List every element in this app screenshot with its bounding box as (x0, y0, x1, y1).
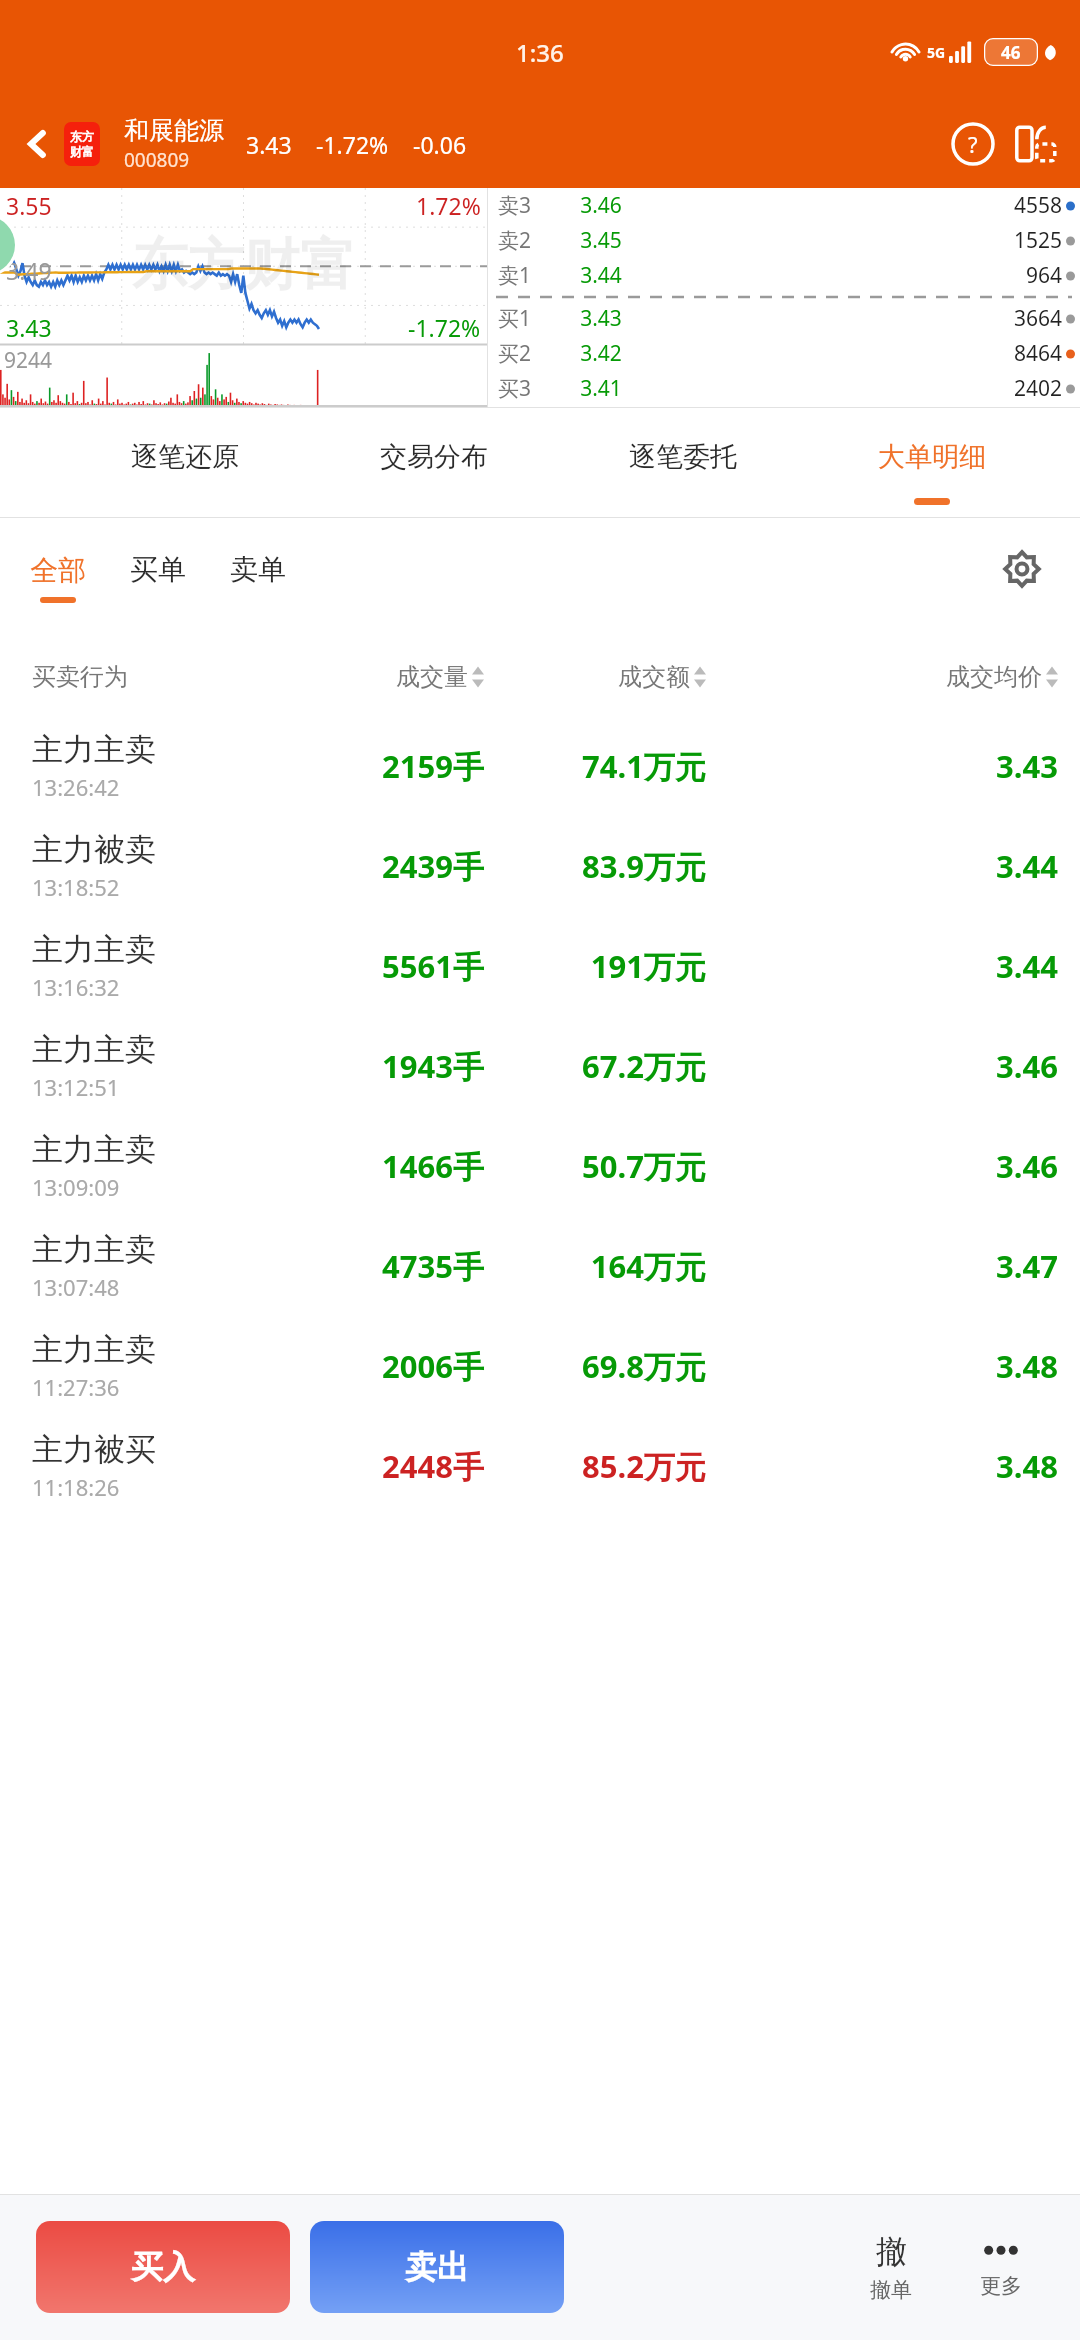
button[interactable]: 买入 (36, 2221, 290, 2313)
staticText: 000809 (124, 147, 190, 173)
button[interactable]: 买单 (130, 552, 186, 587)
staticText: 全部 (30, 553, 86, 588)
button[interactable]: 更多 (946, 2194, 1056, 2340)
staticText: 主力主卖 (32, 730, 156, 769)
staticText: 卖单 (230, 552, 286, 587)
staticText: 财富 (70, 144, 94, 159)
staticText: 164万元 (484, 1245, 706, 1287)
button[interactable]: 主力主卖 (0, 1316, 1080, 1416)
staticText: 成交均价 (946, 662, 1042, 692)
staticText: 主力主卖 (32, 1130, 156, 1169)
button[interactable]: 卖3 (488, 188, 1080, 223)
button[interactable]: 成交量 (262, 662, 484, 692)
button[interactable]: 成交额 (484, 662, 706, 692)
staticText: 主力主卖 (32, 1330, 156, 1369)
staticText: 买入 (131, 2247, 195, 2287)
staticText: 更多 (980, 2273, 1022, 2299)
staticText: 3.46 (706, 1045, 1058, 1087)
staticText: 买3 (498, 374, 558, 403)
staticText: 2402 (644, 374, 1062, 403)
button[interactable]: 逐笔还原 (60, 408, 309, 518)
staticText: 买单 (130, 552, 186, 587)
staticText: 主力主卖 (32, 1230, 156, 1269)
staticText: 3.45 (558, 226, 644, 255)
button[interactable]: 成交均价 (706, 662, 1058, 692)
staticText: 13:12:51 (32, 1072, 120, 1102)
staticText: -0.06 (413, 129, 467, 160)
staticText: 1.72% (416, 190, 481, 221)
staticText: 5561手 (262, 945, 484, 987)
button[interactable]: 卖出 (310, 2221, 564, 2313)
staticText: 大单明细 (878, 440, 986, 474)
button[interactable]: 逐笔委托 (558, 408, 807, 518)
staticText: 3.48 (706, 1445, 1058, 1487)
button[interactable]: 主力被卖 (0, 816, 1080, 916)
staticText: 3.46 (706, 1145, 1058, 1187)
staticText: 主力被买 (32, 1430, 156, 1469)
staticText: 83.9万元 (484, 845, 706, 887)
staticText: 3.44 (706, 845, 1058, 887)
staticText: 11:18:26 (32, 1472, 120, 1502)
staticText: 3.44 (706, 945, 1058, 987)
staticText: 4558 (644, 191, 1062, 220)
button[interactable]: 主力被买 (0, 1416, 1080, 1516)
button[interactable]: 主力主卖 (0, 1016, 1080, 1116)
staticText: 3.42 (558, 339, 644, 368)
staticText: 2439手 (262, 845, 484, 887)
button[interactable]: 买1 (488, 301, 1080, 336)
button[interactable]: 撤 (836, 2194, 946, 2340)
button[interactable]: 卖单 (230, 552, 286, 587)
button[interactable]: Back (14, 120, 62, 168)
button[interactable]: Settings (994, 541, 1050, 597)
staticText: 买2 (498, 339, 558, 368)
button[interactable]: 卖2 (488, 223, 1080, 258)
staticText: 1943手 (262, 1045, 484, 1087)
button[interactable]: 大单明细 (807, 408, 1056, 518)
staticText: ? (968, 129, 978, 159)
staticText: 67.2万元 (484, 1045, 706, 1087)
staticText: 3.43 (706, 745, 1058, 787)
staticText: 9244 (4, 346, 53, 375)
staticText: 逐笔委托 (629, 440, 737, 474)
staticText: -1.72% (316, 129, 389, 160)
staticText: 2006手 (262, 1345, 484, 1387)
button[interactable]: 主力主卖 (0, 716, 1080, 816)
staticText: 1:36 (516, 36, 564, 69)
staticText: 3.43 (246, 129, 292, 160)
staticText: 1525 (644, 226, 1062, 255)
staticText: 11:27:36 (32, 1372, 120, 1402)
staticText: 1466手 (262, 1145, 484, 1187)
button[interactable]: 主力主卖 (0, 916, 1080, 1016)
button[interactable]: 买2 (488, 336, 1080, 371)
staticText: 3.55 (6, 190, 52, 221)
staticText: 3.46 (558, 191, 644, 220)
staticText: 成交额 (618, 662, 690, 692)
staticText: 3.49 (6, 255, 52, 286)
staticText: 3.43 (6, 312, 52, 343)
staticText: 4735手 (262, 1245, 484, 1287)
staticText: 2159手 (262, 745, 484, 787)
staticText: 13:18:52 (32, 872, 120, 902)
staticText: 13:09:09 (32, 1172, 120, 1202)
button[interactable]: 卖1 (488, 258, 1080, 293)
button[interactable]: Chat (0, 213, 18, 277)
staticText: 主力主卖 (32, 1030, 156, 1069)
staticText: 13:26:42 (32, 772, 120, 802)
staticText: 买1 (498, 304, 558, 333)
button[interactable]: 交易分布 (309, 408, 558, 518)
button[interactable]: 主力主卖 (0, 1116, 1080, 1216)
staticText: 3664 (644, 304, 1062, 333)
button[interactable]: Layout (1010, 118, 1062, 170)
staticText: 撤 (876, 2232, 907, 2271)
button[interactable]: 主力主卖 (0, 1216, 1080, 1316)
staticText: 85.2万元 (484, 1445, 706, 1487)
button[interactable]: Help (946, 117, 1000, 171)
staticText: 3.43 (558, 304, 644, 333)
staticText: 东方 (70, 129, 94, 144)
staticText: 50.7万元 (484, 1145, 706, 1187)
staticText: 逐笔还原 (131, 440, 239, 474)
button[interactable]: 全部 (30, 553, 86, 603)
button[interactable]: 买3 (488, 371, 1080, 406)
staticText: 东方财富 (132, 230, 356, 301)
staticText: 成交量 (396, 662, 468, 692)
